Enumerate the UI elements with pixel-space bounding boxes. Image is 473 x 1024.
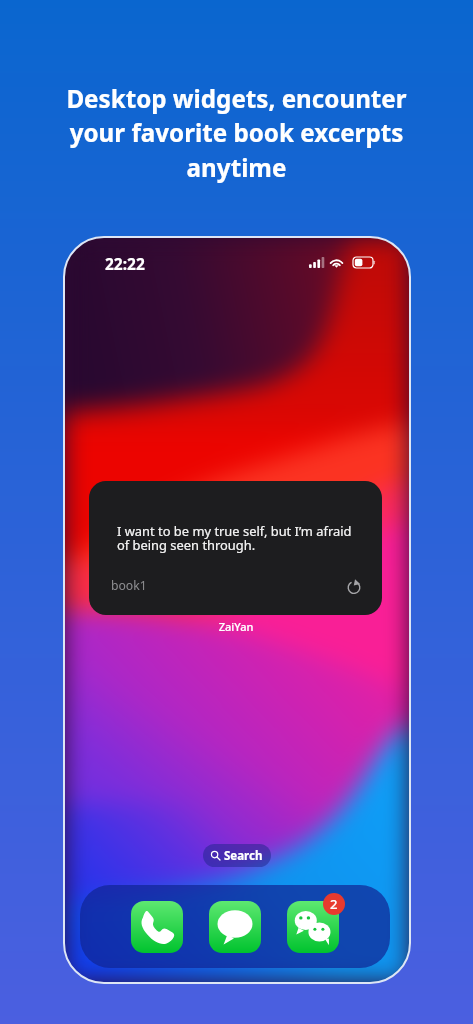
button[interactable]: Search [203,844,271,867]
staticText: Desktop widgets, encounter your favorite… [0,82,473,185]
button[interactable]: Messages [209,901,261,953]
staticText: 22:22 [105,253,145,274]
staticText: ZaiYan [89,619,383,634]
button[interactable]: Phone [131,901,183,953]
staticText: Search [224,848,263,864]
button[interactable]: I want to be my true self, but I’m afrai… [89,481,382,615]
staticText: 2 [330,895,338,913]
staticText: book1 [111,577,147,594]
button[interactable]: Refresh [343,576,365,598]
button[interactable]: WeChat [287,901,339,953]
staticText: I want to be my true self, but I’m afrai… [117,522,357,554]
